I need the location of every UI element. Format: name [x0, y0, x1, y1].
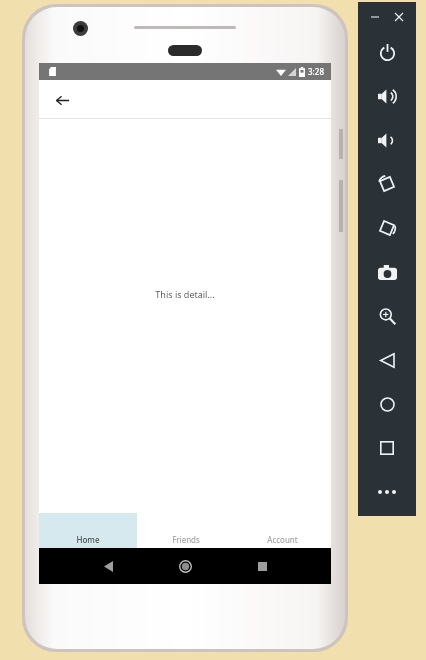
staticText: Friends: [172, 534, 200, 545]
button[interactable]: Volume up: [358, 74, 416, 118]
staticText: This is detail...: [155, 288, 215, 300]
staticText: Home: [76, 534, 100, 545]
button[interactable]: Home: [39, 513, 137, 548]
button[interactable]: Back: [358, 338, 416, 382]
button[interactable]: Zoom: [358, 294, 416, 338]
button[interactable]: More: [358, 470, 416, 514]
button[interactable]: Rotate right: [358, 206, 416, 250]
staticText: Account: [267, 534, 298, 545]
staticText: 3:28: [308, 66, 324, 77]
button[interactable]: Home: [172, 553, 198, 579]
button[interactable]: Friends: [137, 513, 234, 548]
button[interactable]: Power: [358, 30, 416, 74]
button[interactable]: Account: [234, 513, 331, 548]
button[interactable]: Overview: [358, 426, 416, 470]
button[interactable]: Recent apps: [249, 553, 275, 579]
button[interactable]: Volume down: [358, 118, 416, 162]
button[interactable]: Back: [95, 553, 121, 579]
button[interactable]: Back: [47, 85, 77, 115]
button[interactable]: Close: [392, 10, 406, 24]
button[interactable]: Rotate left: [358, 162, 416, 206]
button[interactable]: Home: [358, 382, 416, 426]
button[interactable]: Minimize: [368, 10, 382, 24]
button[interactable]: Take screenshot: [358, 250, 416, 294]
